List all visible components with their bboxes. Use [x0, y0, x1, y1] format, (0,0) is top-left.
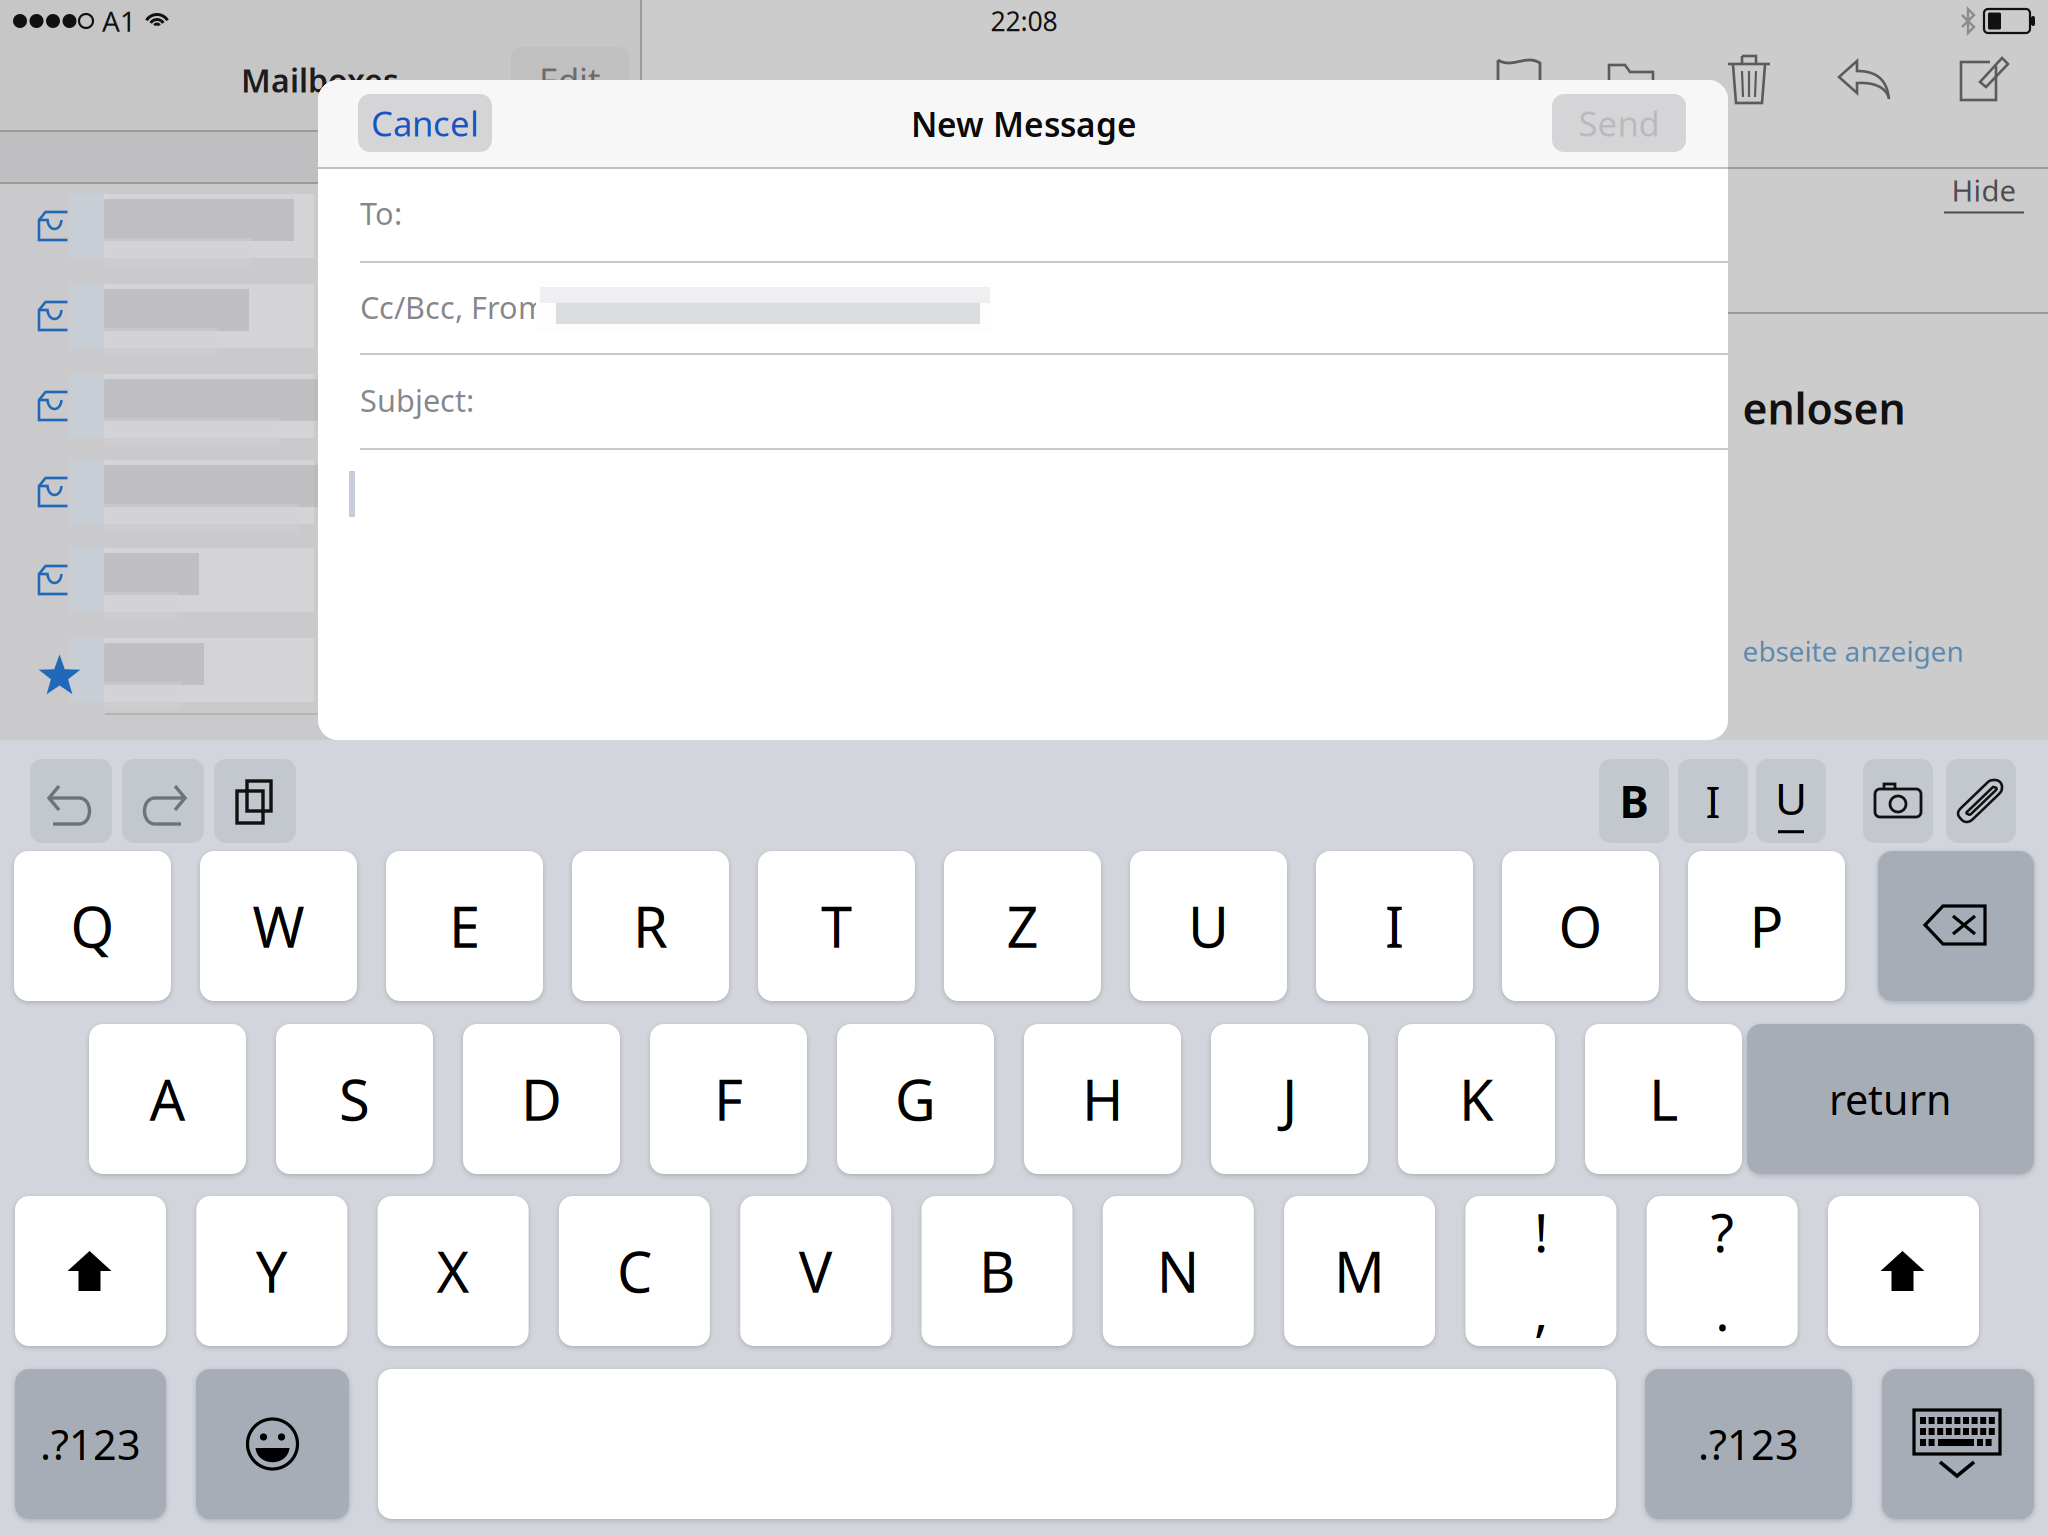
button[interactable]: To:: [360, 167, 1686, 259]
button[interactable]: Bold: [1599, 759, 1669, 843]
staticText: R: [633, 889, 668, 963]
staticText: X: [437, 1234, 470, 1308]
staticText: V: [799, 1234, 833, 1308]
staticText: U: [1775, 769, 1807, 827]
button[interactable]: Redo: [122, 759, 204, 843]
button[interactable]: F: [650, 1024, 807, 1174]
button[interactable]: Paste: [214, 759, 296, 843]
button[interactable]: Z: [944, 851, 1101, 1001]
staticText: F: [714, 1062, 743, 1136]
staticText: Cc/Bcc, From: [360, 287, 547, 327]
staticText: Z: [1006, 889, 1038, 963]
staticText: E: [449, 889, 480, 963]
staticText: M: [1334, 1234, 1385, 1308]
staticText: T: [821, 889, 852, 963]
button[interactable]: Insert Photo: [1863, 759, 1933, 843]
button[interactable]: C: [559, 1196, 710, 1346]
staticText: L: [1649, 1062, 1678, 1136]
button[interactable]: Delete: [1878, 851, 2034, 1001]
button[interactable]: Undo: [30, 759, 112, 843]
staticText: .?123: [1698, 1417, 1799, 1471]
staticText: .: [1715, 1275, 1729, 1346]
staticText: I: [1705, 772, 1720, 830]
button[interactable]: Attach File: [1946, 759, 2016, 843]
staticText: To:: [360, 193, 402, 233]
staticText: Mailboxes: [241, 59, 399, 101]
staticText: New Message: [911, 102, 1137, 146]
staticText: K: [1459, 1062, 1494, 1136]
button[interactable]: H: [1024, 1024, 1181, 1174]
button[interactable]: U: [1130, 851, 1287, 1001]
button[interactable]: X: [378, 1196, 529, 1346]
staticText: A: [149, 1062, 185, 1136]
button[interactable]: O: [1502, 851, 1659, 1001]
staticText: enlosen: [1742, 380, 1905, 436]
button[interactable]: M: [1284, 1196, 1435, 1346]
button[interactable]: return: [1747, 1024, 2034, 1174]
staticText: C: [617, 1234, 652, 1308]
button[interactable]: Q: [14, 851, 171, 1001]
staticText: S: [339, 1062, 370, 1136]
button[interactable]: L: [1585, 1024, 1742, 1174]
button[interactable]: N: [1103, 1196, 1254, 1346]
button[interactable]: K: [1398, 1024, 1555, 1174]
button[interactable]: V: [740, 1196, 891, 1346]
button[interactable]: .?123: [15, 1369, 166, 1519]
button[interactable]: Send: [1552, 94, 1686, 152]
button[interactable]: Cancel: [358, 94, 492, 152]
button[interactable]: !: [1465, 1196, 1616, 1346]
staticText: P: [1749, 889, 1783, 963]
staticText: Send: [1578, 100, 1659, 146]
staticText: O: [1558, 889, 1602, 963]
staticText: W: [252, 889, 304, 963]
button[interactable]: .?123: [1645, 1369, 1852, 1519]
button[interactable]: R: [572, 851, 729, 1001]
staticText: J: [1282, 1062, 1297, 1136]
button[interactable]: J: [1211, 1024, 1368, 1174]
staticText: Y: [256, 1234, 288, 1308]
staticText: !: [1534, 1196, 1548, 1267]
button[interactable]: D: [463, 1024, 620, 1174]
staticText: B: [979, 1234, 1015, 1308]
staticText: .?123: [40, 1417, 141, 1471]
button[interactable]: B: [921, 1196, 1072, 1346]
button[interactable]: Hide Keyboard: [1882, 1369, 2034, 1519]
staticText: H: [1082, 1062, 1123, 1136]
button[interactable]: T: [758, 851, 915, 1001]
button[interactable]: A: [89, 1024, 246, 1174]
staticText: Q: [70, 889, 114, 963]
staticText: Hide: [1951, 170, 2016, 209]
button[interactable]: Shift: [1828, 1196, 1979, 1346]
button[interactable]: P: [1688, 851, 1845, 1001]
button[interactable]: Italic: [1678, 759, 1748, 843]
button[interactable]: Subject:: [360, 354, 1686, 446]
staticText: A1: [102, 2, 136, 40]
staticText: G: [895, 1062, 936, 1136]
button[interactable]: Hide: [1936, 169, 2032, 215]
button[interactable]: S: [276, 1024, 433, 1174]
staticText: ?: [1711, 1196, 1734, 1267]
staticText: ,: [1534, 1275, 1548, 1346]
button[interactable]: Emoji: [196, 1369, 349, 1519]
staticText: N: [1157, 1234, 1200, 1308]
staticText: 22:08: [990, 3, 1057, 39]
staticText: U: [1188, 889, 1229, 963]
staticText: Edit: [539, 57, 601, 103]
button[interactable]: W: [200, 851, 357, 1001]
staticText: return: [1829, 1072, 1952, 1126]
button[interactable]: G: [837, 1024, 994, 1174]
button[interactable]: Underline: [1756, 759, 1826, 843]
staticText: I: [1385, 889, 1404, 963]
button[interactable]: Shift: [15, 1196, 166, 1346]
button[interactable]: E: [386, 851, 543, 1001]
button[interactable]: Y: [196, 1196, 347, 1346]
staticText: D: [521, 1062, 562, 1136]
staticText: ebseite anzeigen: [1742, 632, 1963, 670]
button[interactable]: Cc/Bcc, From: [360, 261, 1686, 353]
staticText: B: [1619, 772, 1648, 830]
button[interactable]: ?: [1647, 1196, 1798, 1346]
staticText: Subject:: [360, 380, 474, 420]
staticText: Cancel: [371, 100, 479, 146]
button[interactable]: I: [1316, 851, 1473, 1001]
